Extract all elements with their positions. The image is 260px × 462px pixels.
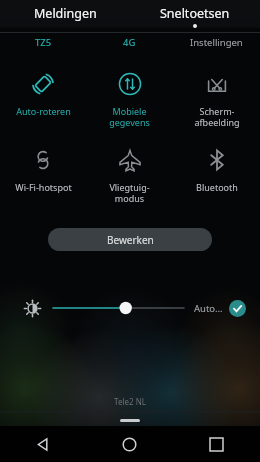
button[interactable]: Recents bbox=[173, 426, 260, 462]
other: Brightness bbox=[24, 300, 41, 317]
staticText: 4G bbox=[123, 36, 136, 49]
button[interactable]: Vliegtuig-modus bbox=[86, 138, 173, 214]
staticText: Auto… bbox=[194, 302, 223, 315]
staticText: Bewerken bbox=[107, 233, 154, 247]
staticText: Tele2 NL bbox=[114, 396, 146, 407]
staticText: Bluetooth bbox=[196, 181, 238, 193]
staticText: Auto-roteren bbox=[16, 105, 71, 117]
staticText: Vliegtuig- modus bbox=[109, 181, 150, 204]
button[interactable]: Scherm-afbeelding bbox=[173, 62, 260, 138]
staticText: TZ5 bbox=[35, 36, 52, 49]
button[interactable] bbox=[53, 296, 184, 320]
button[interactable]: Home bbox=[86, 426, 173, 462]
button[interactable]: Bewerken bbox=[48, 228, 212, 251]
button[interactable]: Sneltoetsen bbox=[130, 0, 260, 33]
staticText: Meldingen bbox=[34, 5, 97, 22]
button[interactable]: Bluetooth bbox=[173, 138, 260, 214]
button[interactable]: Auto-roteren bbox=[0, 62, 86, 138]
button[interactable]: Meldingen bbox=[0, 0, 130, 33]
button[interactable]: Instellingen bbox=[173, 33, 260, 52]
button[interactable]: Mobielegegevens bbox=[86, 62, 173, 138]
staticText: Scherm- afbeelding bbox=[194, 105, 240, 128]
staticText: Instellingen bbox=[190, 36, 243, 49]
button[interactable]: Wi-Fi-hotspot bbox=[0, 138, 86, 214]
staticText: Mobiele gegevens bbox=[109, 105, 150, 128]
button[interactable] bbox=[120, 419, 140, 422]
staticText: Sneltoetsen bbox=[160, 5, 230, 22]
button[interactable]: Back bbox=[0, 426, 86, 462]
staticText: Wi-Fi-hotspot bbox=[15, 181, 72, 193]
button[interactable]: Auto brightness bbox=[229, 300, 246, 317]
